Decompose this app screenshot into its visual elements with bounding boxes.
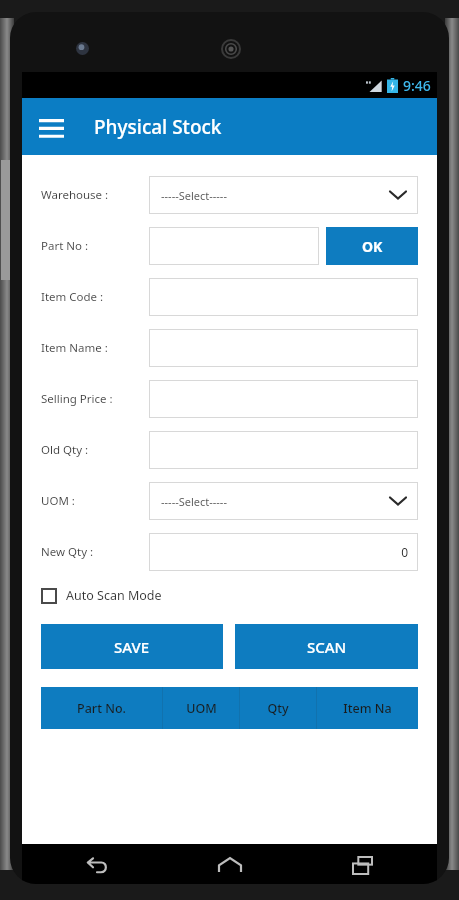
- staticText: Physical Stock: [94, 114, 222, 140]
- button[interactable]: Back: [80, 848, 114, 882]
- staticText: Warehouse :: [41, 187, 109, 203]
- button[interactable]: [149, 431, 418, 469]
- button[interactable]: UOM: [163, 687, 239, 729]
- staticText: Old Qty :: [41, 442, 89, 458]
- staticText: New Qty :: [41, 544, 94, 560]
- staticText: UOM: [186, 700, 217, 717]
- button[interactable]: Open navigation menu: [36, 112, 66, 142]
- button[interactable]: Item Na: [317, 687, 418, 729]
- button[interactable]: [149, 227, 319, 265]
- staticText: UOM :: [41, 493, 75, 509]
- button[interactable]: Auto Scan Mode: [41, 585, 162, 606]
- staticText: Part No.: [77, 700, 126, 717]
- staticText: OK: [362, 237, 383, 256]
- button[interactable]: Home: [213, 848, 247, 882]
- staticText: SCAN: [307, 637, 347, 657]
- button[interactable]: OK: [326, 227, 418, 265]
- button[interactable]: [149, 329, 418, 367]
- button[interactable]: [149, 278, 418, 316]
- staticText: -----Select-----: [161, 494, 227, 509]
- button[interactable]: SCAN: [235, 624, 418, 669]
- staticText: Auto Scan Mode: [66, 587, 162, 604]
- staticText: Qty: [267, 700, 289, 717]
- staticText: 0: [401, 544, 408, 560]
- button[interactable]: Part No.: [41, 687, 162, 729]
- button[interactable]: [149, 380, 418, 418]
- button[interactable]: Qty: [240, 687, 316, 729]
- staticText: Part No :: [41, 238, 89, 254]
- staticText: Selling Price :: [41, 391, 113, 407]
- staticText: -----Select-----: [161, 188, 227, 203]
- staticText: Item Name :: [41, 340, 108, 356]
- staticText: 9:46: [403, 76, 431, 95]
- button[interactable]: -----Select-----: [149, 176, 418, 214]
- button[interactable]: Recent apps: [345, 848, 379, 882]
- staticText: Item Na: [343, 700, 392, 717]
- button[interactable]: 0: [149, 533, 418, 571]
- staticText: SAVE: [114, 637, 150, 657]
- button[interactable]: -----Select-----: [149, 482, 418, 520]
- staticText: Item Code :: [41, 289, 104, 305]
- button[interactable]: SAVE: [41, 624, 223, 669]
